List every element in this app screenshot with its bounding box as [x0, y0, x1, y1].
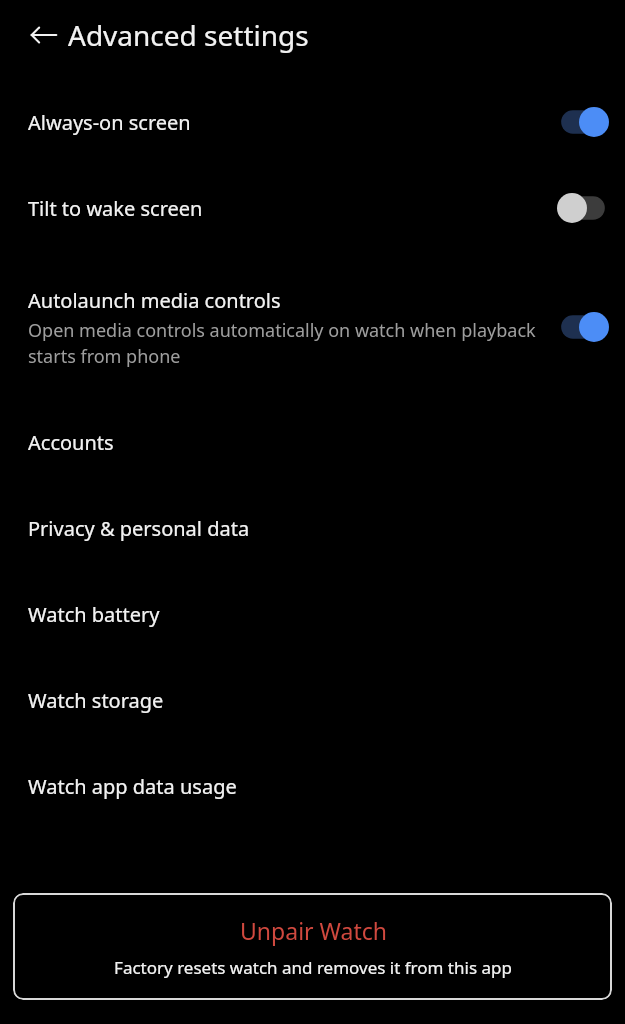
button[interactable]: Tilt to wake screen [0, 180, 625, 236]
button[interactable]: Autolaunch media controls [0, 262, 625, 392]
staticText: Open media controls automatically on wat… [28, 318, 547, 368]
staticText: Tilt to wake screen [28, 195, 203, 222]
button[interactable]: Back [22, 13, 66, 57]
staticText: Always-on screen [28, 109, 191, 136]
button[interactable]: Watch battery [0, 586, 625, 642]
staticText: Privacy & personal data [28, 515, 250, 542]
button[interactable]: Watch app data usage [0, 758, 625, 814]
staticText: Watch battery [28, 601, 160, 628]
button[interactable]: Privacy & personal data [0, 500, 625, 556]
button[interactable]: Accounts [0, 414, 625, 470]
button[interactable]: Watch storage [0, 672, 625, 728]
staticText: Watch storage [28, 687, 164, 714]
staticText: Watch app data usage [28, 773, 237, 800]
button[interactable]: Always-on screen [0, 94, 625, 150]
staticText: Autolaunch media controls [28, 287, 281, 314]
button[interactable]: Unpair Watch [13, 893, 612, 1000]
staticText: Unpair Watch [240, 915, 387, 946]
staticText: Advanced settings [68, 16, 309, 54]
staticText: Factory resets watch and removes it from… [114, 956, 512, 979]
staticText: Accounts [28, 429, 114, 456]
